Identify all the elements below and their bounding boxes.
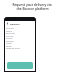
staticText: Estimate £8.50 — [6, 47, 20, 50]
staticText: Oak St — [6, 30, 13, 32]
button[interactable]: Parcel — [6, 37, 34, 42]
staticText: Drop off — [6, 32, 15, 35]
staticText: Pick up — [6, 27, 14, 30]
button[interactable]: Drop off — [6, 32, 34, 37]
staticText: Parcel — [6, 37, 13, 40]
button[interactable]: Back — [6, 22, 20, 25]
staticText: When — [6, 42, 12, 45]
staticText: Medium — [6, 40, 14, 42]
button[interactable]: Pick up — [6, 27, 34, 32]
staticText: the Bounce platform — [16, 7, 49, 11]
other: Back — [6, 22, 9, 25]
staticText: Request your delivery via — [12, 3, 52, 7]
button[interactable] — [7, 62, 33, 69]
staticText: Today — [6, 45, 12, 47]
staticText: Delivery — [10, 22, 20, 25]
staticText: Elm Ave — [6, 35, 14, 37]
button[interactable]: When — [6, 42, 34, 47]
